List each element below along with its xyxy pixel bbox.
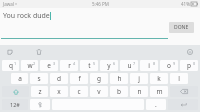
staticText: 0 [193, 61, 196, 66]
staticText: l [178, 74, 180, 83]
staticText: u [127, 61, 132, 70]
staticText: 7 [133, 61, 136, 66]
button[interactable]: a [11, 73, 28, 84]
button[interactable]: m [150, 86, 168, 97]
staticText: 4 [73, 61, 76, 66]
button[interactable]: d [50, 73, 68, 84]
staticText: q [9, 61, 13, 70]
button[interactable]: Emoji [185, 47, 195, 57]
staticText: v [97, 87, 101, 96]
button[interactable]: DONE [169, 22, 194, 33]
button[interactable]: y [100, 60, 118, 71]
button[interactable]: o [160, 60, 178, 71]
button[interactable]: Stickers [5, 47, 15, 57]
button[interactable]: k [150, 73, 168, 84]
staticText: 41% [181, 1, 190, 7]
staticText: b [117, 87, 121, 96]
staticText: d [57, 74, 61, 83]
staticText: You rock dude [3, 11, 50, 21]
staticText: r [68, 61, 71, 70]
staticText: z [38, 87, 42, 96]
staticText: j [138, 74, 140, 83]
button[interactable]: Settings [30, 99, 50, 110]
staticText: p [187, 61, 191, 70]
button[interactable]: Enter [168, 99, 198, 110]
button[interactable]: b [110, 86, 128, 97]
staticText: h [117, 74, 122, 83]
button[interactable]: f [70, 73, 88, 84]
button[interactable]: w [21, 60, 38, 71]
staticText: y [107, 61, 111, 70]
staticText: k [157, 74, 161, 83]
button[interactable]: Themes [34, 47, 44, 57]
staticText: g [97, 74, 101, 83]
staticText: 8 [153, 61, 156, 66]
staticText: f [78, 74, 81, 83]
button[interactable]: Shift [2, 86, 29, 97]
staticText: 3 [53, 61, 56, 66]
staticText: 9 [173, 61, 176, 66]
staticText: m [156, 87, 163, 96]
button[interactable]: p [180, 60, 198, 71]
staticText: e [47, 61, 51, 70]
staticText: 12# [10, 101, 20, 108]
staticText: 5 [93, 61, 96, 66]
staticText: o [167, 61, 171, 70]
button[interactable]: u [120, 60, 138, 71]
staticText: 1 [14, 61, 17, 66]
staticText: n [137, 87, 142, 96]
button[interactable]: . [146, 99, 166, 110]
button[interactable]: i [140, 60, 158, 71]
button[interactable]: v [90, 86, 108, 97]
button[interactable]: j [130, 73, 148, 84]
button[interactable]: r [60, 60, 78, 71]
button[interactable]: 12# [2, 99, 28, 110]
staticText: 2 [33, 61, 36, 66]
button[interactable]: t [80, 60, 98, 71]
staticText: s [37, 74, 41, 83]
staticText: w [27, 61, 33, 70]
button[interactable]: s [30, 73, 48, 84]
staticText: i [148, 61, 150, 70]
staticText: Jawal ᵛ [3, 1, 17, 7]
staticText: x [57, 87, 61, 96]
button[interactable]: z [31, 86, 48, 97]
button[interactable]: h [110, 73, 128, 84]
button[interactable]: q [2, 60, 19, 71]
button[interactable]: x [50, 86, 68, 97]
staticText: 6 [113, 61, 116, 66]
button[interactable]: l [170, 73, 188, 84]
button[interactable]: e [40, 60, 58, 71]
staticText: c [77, 87, 81, 96]
staticText: t [88, 61, 91, 70]
button[interactable]: g [90, 73, 108, 84]
staticText: a [18, 74, 22, 83]
button[interactable]: n [130, 86, 148, 97]
staticText: . [155, 100, 157, 109]
button[interactable]: c [70, 86, 88, 97]
button[interactable]: Backspace [170, 86, 198, 97]
staticText: 5:46 PM [92, 1, 109, 7]
staticText: DONE [174, 24, 189, 31]
